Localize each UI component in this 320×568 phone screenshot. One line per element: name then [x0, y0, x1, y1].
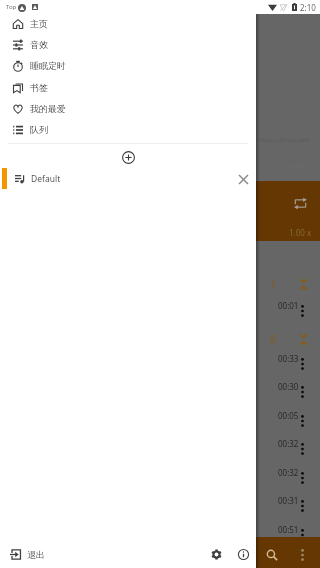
staticText: 音效	[30, 39, 48, 50]
staticText: 00:51	[278, 524, 299, 535]
button[interactable]: 00:33	[256, 348, 320, 376]
button[interactable]: 书签	[0, 77, 256, 98]
button[interactable]: More options	[294, 298, 310, 314]
button[interactable]: 睡眠定时	[0, 55, 256, 76]
staticText: 00:05	[278, 410, 299, 421]
staticText: 队列	[30, 124, 48, 135]
button[interactable]: 音效	[0, 34, 256, 55]
button[interactable]: Group 8	[256, 328, 320, 348]
staticText: 睡眠定时	[30, 60, 66, 71]
button[interactable]: More options	[294, 436, 310, 452]
button[interactable]: More options	[294, 493, 310, 509]
staticText: 00:33	[278, 353, 299, 364]
button[interactable]: More options	[294, 379, 310, 395]
button[interactable]: 00:30	[256, 376, 320, 404]
staticText: Top	[6, 3, 17, 11]
button[interactable]: More options	[294, 351, 310, 367]
button[interactable]: 主页	[0, 13, 256, 34]
button[interactable]: 队列	[0, 119, 256, 140]
button[interactable]: More options	[294, 465, 310, 481]
button[interactable]: Settings	[204, 542, 228, 566]
staticText: 书签	[30, 82, 48, 93]
staticText: 我的最爱	[30, 103, 66, 114]
staticText: 8	[270, 332, 276, 346]
staticText: 00:31	[278, 495, 299, 506]
staticText: 2:10	[300, 2, 316, 13]
button[interactable]: Repeat	[256, 181, 320, 241]
button[interactable]: 00:32	[256, 462, 320, 490]
button[interactable]: 00:51	[256, 519, 320, 547]
button[interactable]: Group 1	[256, 273, 320, 293]
button[interactable]: Add playlist	[118, 147, 138, 167]
button[interactable]: Close	[232, 168, 254, 190]
button[interactable]: 00:31	[256, 490, 320, 518]
staticText: 00:30	[278, 381, 299, 392]
button[interactable]: 00:32	[256, 433, 320, 461]
button[interactable]: More options	[294, 522, 310, 538]
button[interactable]: Search	[261, 544, 283, 566]
button[interactable]: 00:05	[256, 405, 320, 433]
staticText: 00:01	[278, 300, 299, 311]
staticText: 退出	[27, 549, 45, 560]
staticText: Default	[31, 173, 61, 185]
button[interactable]: Default	[0, 167, 256, 190]
button[interactable]: 退出	[0, 549, 53, 560]
button[interactable]: More options	[291, 544, 313, 566]
button[interactable]: About	[231, 542, 255, 566]
button[interactable]: 我的最爱	[0, 98, 256, 119]
button[interactable]: 00:01	[256, 295, 320, 323]
staticText: 00:32	[278, 438, 299, 449]
button[interactable]: More options	[294, 408, 310, 424]
staticText: 主页	[30, 18, 48, 29]
staticText: 1	[270, 277, 276, 291]
staticText: 1.00 x	[289, 227, 312, 238]
staticText: 00:32	[278, 467, 299, 478]
